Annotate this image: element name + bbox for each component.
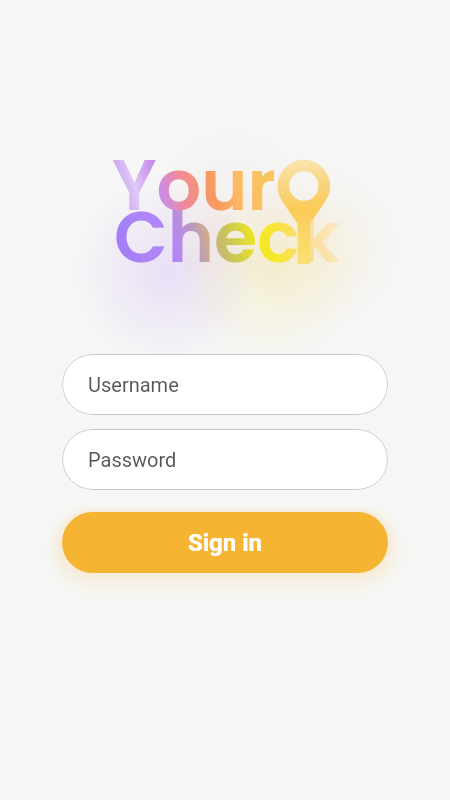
button[interactable]: Username [62, 354, 388, 415]
staticText: Username [88, 373, 179, 396]
staticText: Password [88, 448, 177, 471]
staticText: Check [114, 188, 341, 286]
button[interactable]: Password [62, 429, 388, 490]
button[interactable]: Sign in [62, 512, 388, 573]
staticText: Sign in [188, 529, 263, 557]
staticText: Your [112, 136, 276, 234]
